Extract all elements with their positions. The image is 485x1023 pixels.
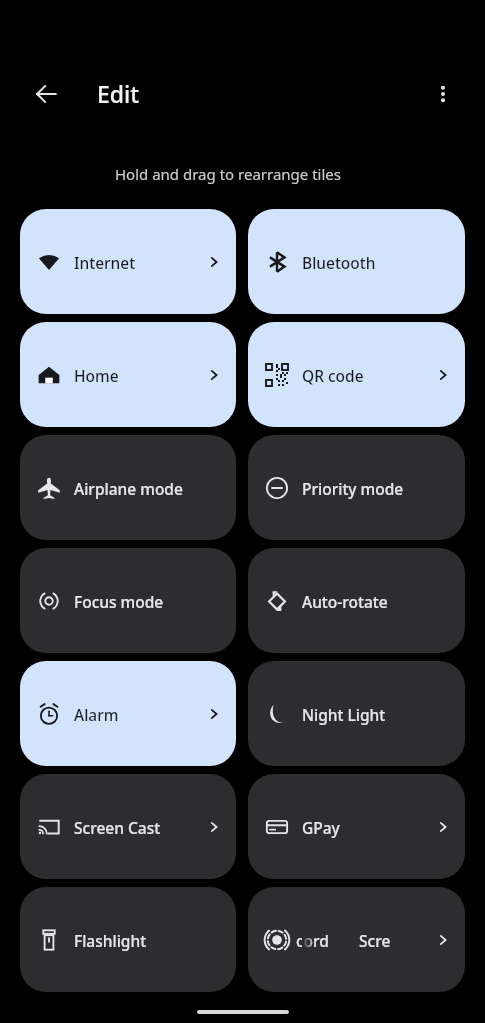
staticText: cord: [296, 930, 329, 951]
staticText: Internet: [74, 252, 136, 273]
button[interactable]: Airplane mode: [20, 435, 236, 540]
staticText: Focus mode: [74, 591, 164, 612]
staticText: Auto-rotate: [302, 591, 388, 612]
staticText: Scre: [359, 930, 391, 951]
staticText: Airplane mode: [74, 478, 183, 499]
staticText: Night Light: [302, 704, 386, 725]
staticText: Alarm: [74, 704, 119, 725]
button[interactable]: Screen Cast: [20, 774, 236, 879]
button[interactable]: GPay: [248, 774, 465, 879]
button[interactable]: Back: [26, 74, 66, 114]
button[interactable]: Home: [20, 322, 236, 427]
button[interactable]: Priority mode: [248, 435, 465, 540]
staticText: GPay: [302, 817, 340, 838]
button[interactable]: Bluetooth: [248, 209, 465, 314]
button[interactable]: Alarm: [20, 661, 236, 766]
button[interactable]: Internet: [20, 209, 236, 314]
button[interactable]: More options: [423, 74, 463, 114]
staticText: Screen Cast: [74, 817, 161, 838]
button[interactable]: Flashlight: [20, 887, 236, 992]
staticText: Flashlight: [74, 930, 147, 951]
button[interactable]: Night Light: [248, 661, 465, 766]
staticText: Priority mode: [302, 478, 404, 499]
staticText: Bluetooth: [302, 252, 376, 273]
staticText: Edit: [97, 78, 140, 109]
staticText: Hold and drag to rearrange tiles: [115, 164, 485, 184]
button[interactable]: Auto-rotate: [248, 548, 465, 653]
button[interactable]: cord: [248, 887, 465, 992]
staticText: QR code: [302, 365, 364, 386]
staticText: Home: [74, 365, 119, 386]
button[interactable]: QR code: [248, 322, 465, 427]
button[interactable]: Focus mode: [20, 548, 236, 653]
